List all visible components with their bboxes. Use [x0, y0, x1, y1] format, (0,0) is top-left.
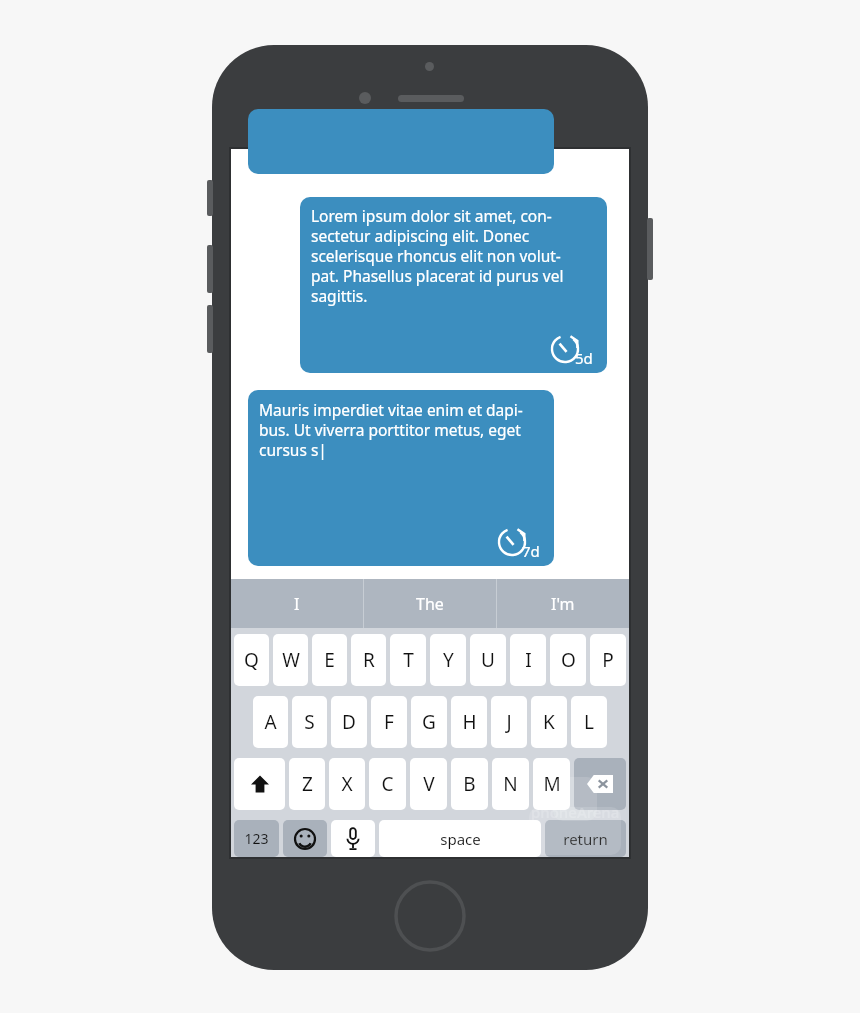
button[interactable]: I — [231, 579, 363, 628]
staticText: B — [463, 771, 476, 797]
button[interactable]: Y — [430, 634, 466, 686]
staticText: A — [264, 709, 277, 735]
staticText: 5d — [575, 348, 593, 368]
staticText: L — [584, 709, 594, 735]
staticText: J — [506, 709, 512, 735]
button[interactable]: D — [331, 696, 367, 748]
button[interactable]: P — [590, 634, 626, 686]
staticText: T — [403, 647, 414, 673]
button[interactable]: X — [329, 758, 365, 810]
button[interactable]: I'm — [497, 579, 629, 628]
staticText: 7d — [522, 541, 540, 561]
button[interactable]: return — [545, 820, 626, 857]
staticText: D — [342, 709, 356, 735]
staticText: P — [602, 647, 614, 673]
staticText: I — [294, 593, 300, 615]
button[interactable]: Q — [234, 634, 269, 686]
button[interactable]: Emoji — [283, 820, 327, 857]
button[interactable]: C — [369, 758, 406, 810]
staticText: O — [561, 647, 576, 673]
staticText: E — [324, 647, 335, 673]
staticText: phoneArena — [531, 802, 620, 822]
staticText: The — [416, 593, 444, 615]
button[interactable]: U — [470, 634, 506, 686]
staticText: Q — [244, 647, 259, 673]
button[interactable]: G — [411, 696, 447, 748]
button[interactable] — [248, 109, 554, 174]
button[interactable]: space — [379, 820, 541, 857]
button[interactable]: 123 — [234, 820, 279, 857]
staticText: C — [381, 771, 394, 797]
staticText: Z — [302, 771, 313, 797]
button[interactable]: J — [491, 696, 527, 748]
button[interactable]: K — [531, 696, 567, 748]
staticText: return — [563, 829, 608, 849]
button[interactable]: Backspace — [574, 758, 626, 810]
button[interactable]: A — [253, 696, 288, 748]
button[interactable]: Z — [289, 758, 325, 810]
button[interactable]: Shift — [234, 758, 285, 810]
staticText: U — [481, 647, 495, 673]
button[interactable]: T — [390, 634, 426, 686]
staticText: H — [462, 709, 477, 735]
staticText: N — [503, 771, 518, 797]
button[interactable]: O — [550, 634, 586, 686]
button[interactable]: E — [312, 634, 347, 686]
button[interactable]: W — [273, 634, 308, 686]
staticText: Lorem ipsum dolor sit amet, con- sectetu… — [311, 205, 564, 307]
staticText: V — [423, 771, 435, 797]
staticText: I — [525, 647, 532, 673]
button[interactable]: H — [451, 696, 487, 748]
button[interactable]: Dictation — [331, 820, 375, 857]
staticText: I'm — [551, 593, 575, 615]
button[interactable]: The — [364, 579, 496, 628]
staticText: 123 — [244, 829, 269, 848]
button[interactable]: Mauris imperdiet vitae enim et dapi- bus… — [248, 390, 554, 566]
staticText: F — [384, 709, 394, 735]
staticText: Y — [443, 647, 454, 673]
button[interactable]: Home — [394, 880, 466, 952]
button[interactable]: L — [571, 696, 607, 748]
button[interactable]: I — [510, 634, 546, 686]
staticText: R — [363, 647, 375, 673]
staticText: space — [440, 829, 481, 849]
button[interactable]: B — [451, 758, 488, 810]
button[interactable]: N — [492, 758, 529, 810]
staticText: Mauris imperdiet vitae enim et dapi- bus… — [259, 399, 523, 461]
staticText: M — [543, 771, 561, 797]
button[interactable]: F — [371, 696, 407, 748]
staticText: S — [304, 709, 315, 735]
button[interactable]: R — [351, 634, 386, 686]
staticText: X — [341, 771, 353, 797]
staticText: K — [543, 709, 555, 735]
staticText: W — [282, 647, 300, 673]
button[interactable]: S — [292, 696, 327, 748]
staticText: G — [422, 709, 436, 735]
button[interactable]: Lorem ipsum dolor sit amet, con- sectetu… — [300, 197, 607, 373]
button[interactable]: V — [410, 758, 447, 810]
button[interactable]: M — [533, 758, 570, 810]
